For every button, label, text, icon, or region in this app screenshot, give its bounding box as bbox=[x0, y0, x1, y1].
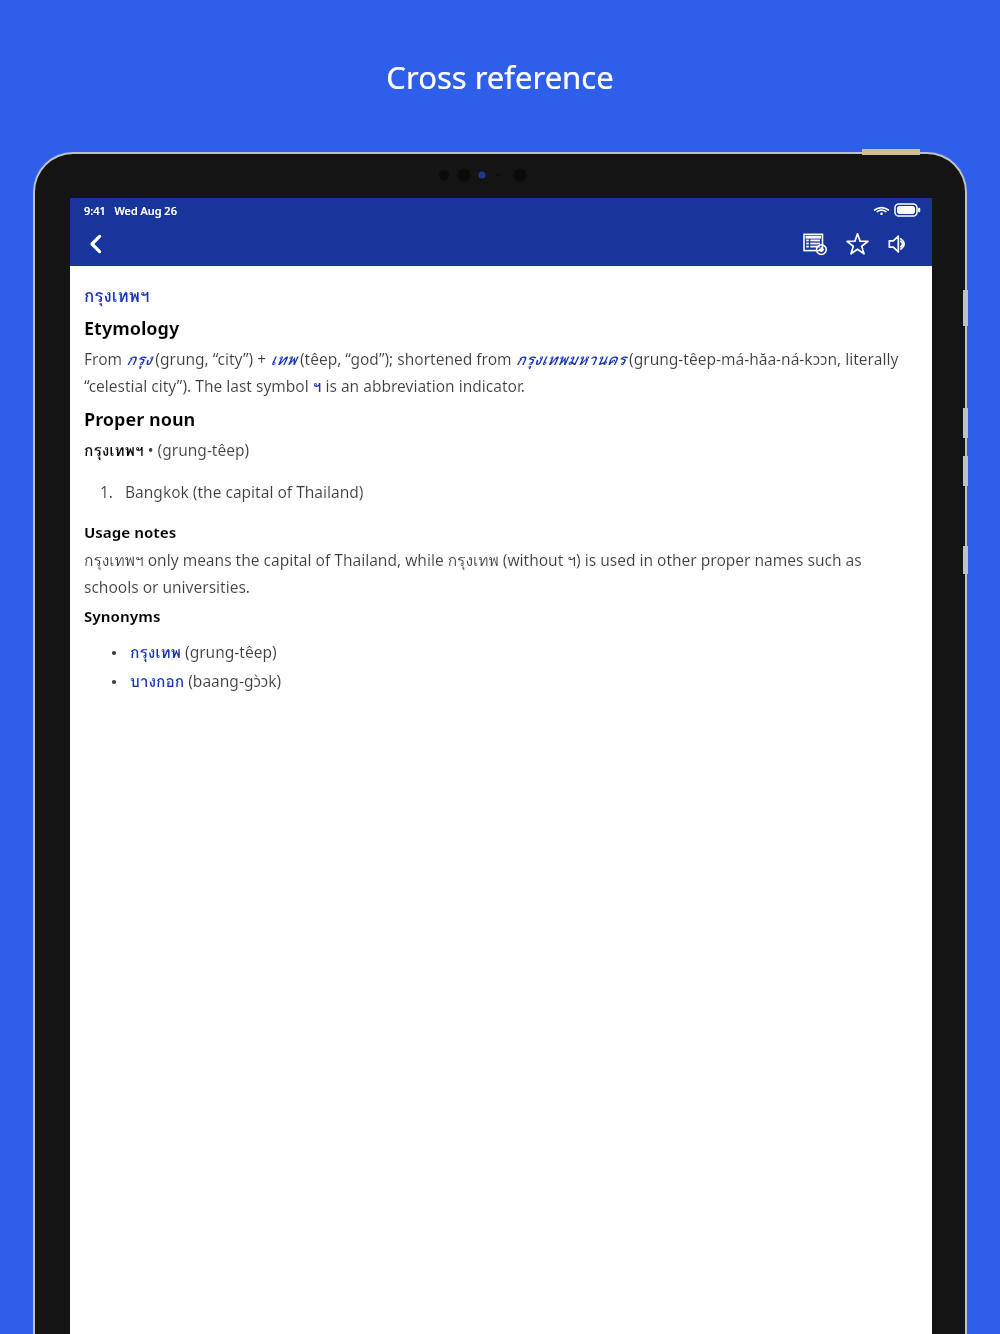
button[interactable]: Pronounce bbox=[878, 223, 920, 265]
button[interactable]: บางกอก (baang-gɔ̀ɔk) bbox=[106, 669, 282, 694]
staticText: กรุงเทพฯ • (grung-têep) bbox=[84, 438, 250, 463]
staticText: Usage notes bbox=[84, 522, 177, 542]
staticText: Synonyms bbox=[84, 606, 161, 626]
staticText: Bangkok (the capital of Thailand) bbox=[125, 481, 364, 502]
staticText: From กรุง (grung, “city”) + เทพ (têep, “… bbox=[84, 347, 918, 398]
staticText: 1. bbox=[100, 481, 114, 502]
staticText: Proper noun bbox=[84, 407, 196, 432]
staticText: กรุงเทพฯ only means the capital of Thail… bbox=[84, 548, 918, 597]
staticText: Etymology bbox=[84, 316, 180, 341]
button[interactable]: Favourite bbox=[836, 223, 878, 265]
button[interactable]: Add to list bbox=[794, 223, 836, 265]
button[interactable]: Back bbox=[74, 222, 118, 266]
staticText: 9:41 Wed Aug 26 bbox=[84, 203, 177, 218]
staticText: บางกอก (baang-gɔ̀ɔk) bbox=[130, 669, 282, 694]
staticText: Cross reference bbox=[386, 56, 614, 98]
staticText: กรุงเทพฯ bbox=[84, 282, 150, 309]
button[interactable]: กรุงเทพ (grung-têep) bbox=[106, 640, 277, 665]
staticText: กรุงเทพ (grung-têep) bbox=[130, 640, 277, 665]
